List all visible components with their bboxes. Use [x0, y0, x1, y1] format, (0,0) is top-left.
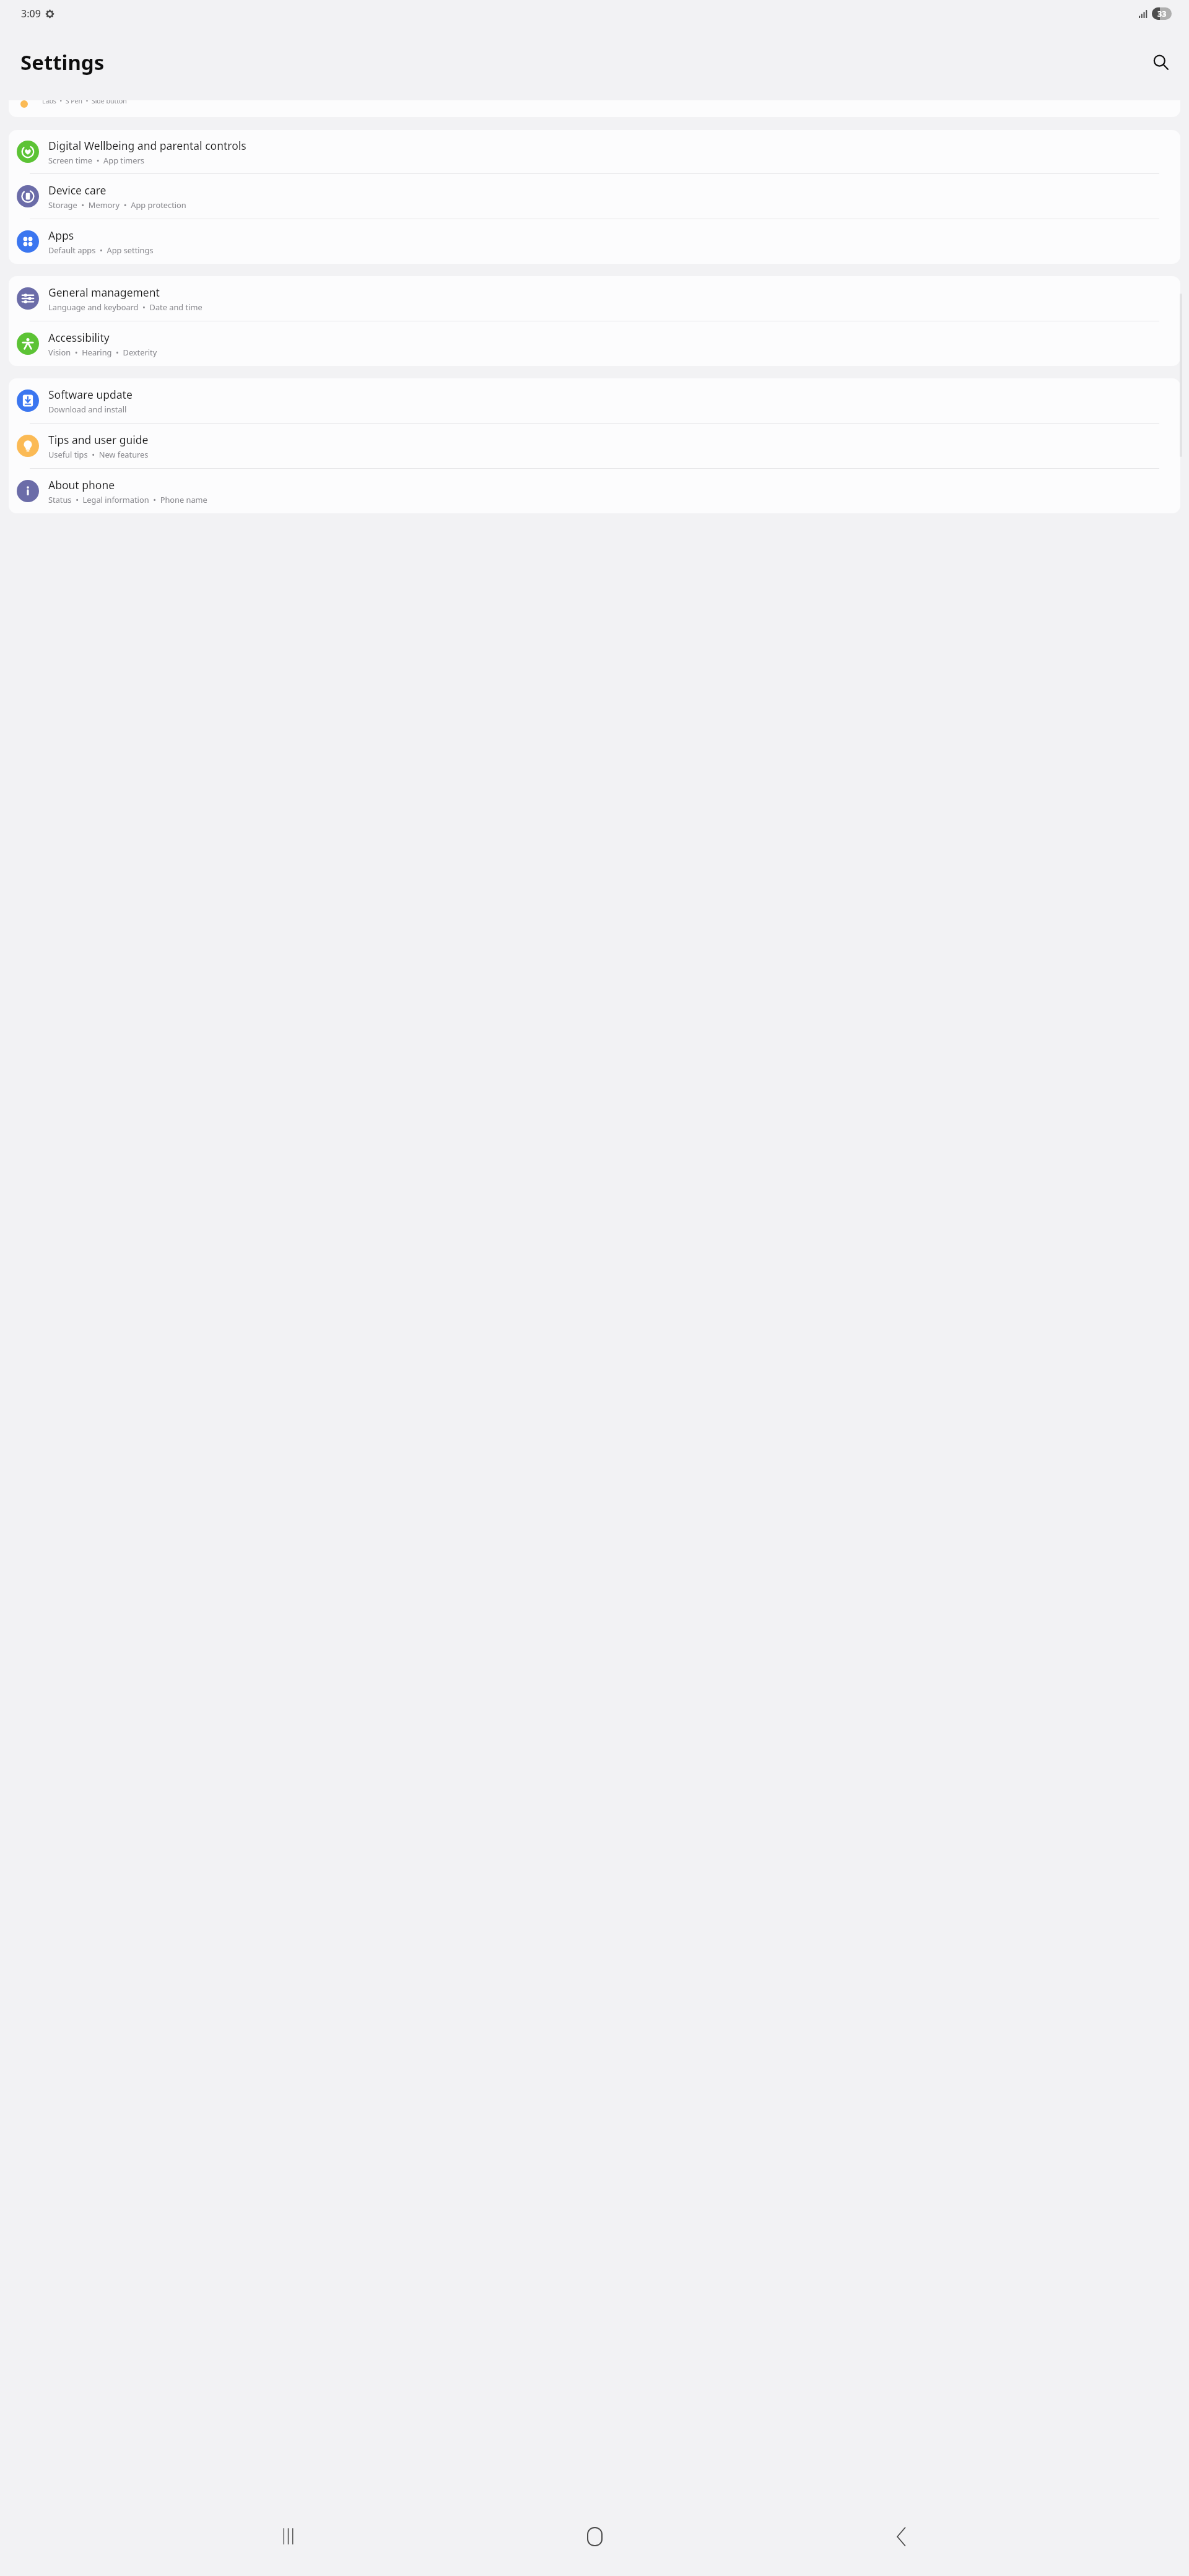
button[interactable]: General management: [9, 276, 1180, 321]
button[interactable]: Back: [882, 2518, 920, 2555]
staticText: About phone: [48, 477, 115, 492]
staticText: Useful tips • New features: [48, 449, 149, 459]
staticText: Download and install: [48, 404, 127, 414]
staticText: General management: [48, 285, 160, 300]
staticText: Default apps • App settings: [48, 245, 154, 255]
button[interactable]: Software update: [9, 378, 1180, 423]
staticText: Software update: [48, 387, 133, 402]
staticText: Settings: [20, 48, 105, 76]
staticText: Language and keyboard • Date and time: [48, 302, 203, 312]
staticText: Status • Legal information • Phone name: [48, 494, 207, 505]
staticText: Apps: [48, 228, 74, 243]
staticText: 33: [1157, 9, 1167, 19]
staticText: 3:09: [21, 7, 41, 20]
button[interactable]: Search: [1147, 48, 1174, 76]
staticText: Vision • Hearing • Dexterity: [48, 347, 157, 357]
button[interactable]: Accessibility: [9, 321, 1180, 366]
button[interactable]: Tips and user guide: [9, 424, 1180, 468]
staticText: Labs • S Pen • Side button: [42, 100, 127, 105]
staticText: Accessibility: [48, 330, 110, 345]
staticText: Tips and user guide: [48, 432, 149, 447]
button[interactable]: Apps: [9, 219, 1180, 264]
button[interactable]: Recents: [269, 2518, 307, 2555]
button[interactable]: Device care: [9, 174, 1180, 219]
staticText: Storage • Memory • App protection: [48, 199, 186, 210]
staticText: Digital Wellbeing and parental controls: [48, 138, 246, 153]
button[interactable]: About phone: [9, 469, 1180, 513]
button[interactable]: Digital Wellbeing and parental controls: [9, 130, 1180, 173]
staticText: Screen time • App timers: [48, 155, 144, 165]
button[interactable]: Home: [576, 2518, 613, 2555]
staticText: Device care: [48, 183, 107, 198]
